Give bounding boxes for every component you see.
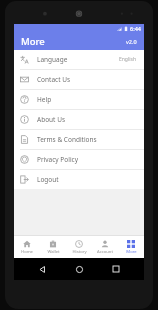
- staticText: More: [21, 35, 45, 48]
- button[interactable]: Account: [92, 236, 118, 258]
- staticText: More: [126, 249, 137, 255]
- button[interactable]: Language: [14, 50, 144, 69]
- button[interactable]: About Us: [14, 110, 144, 129]
- button[interactable]: Help: [14, 90, 144, 109]
- staticText: v2.0: [126, 38, 137, 45]
- staticText: History: [72, 249, 87, 255]
- button[interactable]: More: [118, 236, 144, 258]
- staticText: 6:44: [130, 25, 141, 32]
- staticText: English: [119, 56, 137, 63]
- button[interactable]: Back: [33, 260, 51, 278]
- button[interactable]: Terms & Conditions: [14, 130, 144, 149]
- button[interactable]: Contact Us: [14, 70, 144, 89]
- button[interactable]: Home: [14, 236, 40, 258]
- staticText: Home: [21, 249, 33, 255]
- button[interactable]: Home: [70, 260, 88, 278]
- staticText: Terms & Conditions: [37, 135, 97, 144]
- button[interactable]: Privacy Policy: [14, 150, 144, 169]
- button[interactable]: Logout: [14, 170, 144, 189]
- button[interactable]: Recent apps: [107, 260, 125, 278]
- staticText: Logout: [37, 175, 59, 184]
- staticText: Account: [97, 249, 113, 255]
- staticText: About Us: [37, 115, 66, 124]
- staticText: Contact Us: [37, 75, 71, 84]
- staticText: Wallet: [47, 249, 60, 255]
- staticText: Language: [37, 55, 68, 64]
- button[interactable]: History: [66, 236, 92, 258]
- staticText: Privacy Policy: [37, 155, 79, 164]
- staticText: Help: [37, 95, 52, 104]
- button[interactable]: Wallet: [40, 236, 66, 258]
